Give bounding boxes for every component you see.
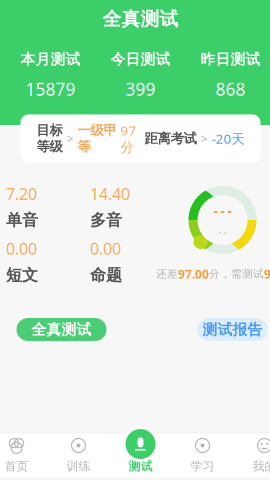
button[interactable]: 测试报告 — [197, 318, 267, 341]
staticText: 还差 — [156, 267, 178, 281]
staticText: 97分 — [120, 121, 136, 155]
staticText: 本月测试 — [20, 50, 80, 68]
staticText: 868 — [215, 77, 245, 100]
staticText: 399 — [125, 77, 155, 100]
staticText: 15879 — [25, 77, 75, 100]
staticText: 97.00 — [178, 266, 209, 282]
button[interactable]: 训练 — [51, 434, 105, 476]
staticText: 昨日测试 — [200, 50, 260, 68]
staticText: 分，需测试 — [209, 267, 264, 281]
staticText: 距离考试 — [144, 130, 196, 147]
staticText: 7.20 — [6, 183, 37, 204]
staticText: 一级甲等 — [77, 122, 116, 155]
staticText: 单音 — [6, 210, 38, 230]
staticText: > — [200, 130, 207, 146]
staticText: 全真测试 — [31, 320, 91, 338]
button[interactable]: 测试，开始录音 — [122, 426, 158, 462]
button[interactable]: 首页 — [0, 434, 43, 476]
button[interactable]: 我的 — [237, 434, 270, 476]
staticText: 今日测试 — [110, 50, 170, 68]
staticText: 学习 — [190, 459, 214, 474]
staticText: 短文 — [6, 265, 38, 285]
staticText: 首页 — [4, 459, 28, 474]
staticText: 14.40 — [90, 183, 130, 204]
button[interactable]: 学习 — [175, 434, 229, 476]
staticText: 测试报告 — [202, 320, 262, 338]
staticText: 测试 — [128, 459, 152, 474]
staticText: > — [66, 130, 73, 146]
staticText: 我的 — [252, 459, 270, 474]
staticText: 目标等级 — [36, 122, 62, 155]
staticText: 全真测试 — [102, 7, 178, 30]
staticText: 训练 — [66, 459, 90, 474]
staticText: 多音 — [90, 210, 122, 230]
staticText: - - — [218, 226, 226, 238]
staticText: 90 — [264, 266, 270, 282]
staticText: 0.00 — [6, 238, 37, 259]
button[interactable]: 全真测试 — [16, 318, 106, 341]
staticText: - - - — [213, 202, 231, 220]
staticText: 命题 — [90, 265, 122, 285]
staticText: -20天 — [211, 130, 244, 147]
staticText: 0.00 — [90, 238, 121, 259]
